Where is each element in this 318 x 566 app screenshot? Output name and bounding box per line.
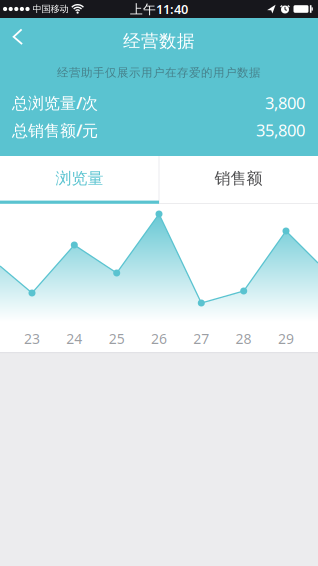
staticText: 经营助手仅展示用户在存爱的用户数据 <box>57 65 261 80</box>
staticText: 24 <box>66 329 82 348</box>
staticText: 销售额 <box>214 168 262 189</box>
staticText: 28 <box>236 329 252 348</box>
staticText: 3,800 <box>265 91 305 114</box>
staticText: 26 <box>151 329 167 348</box>
button[interactable]: 浏览量 <box>0 156 159 204</box>
staticText: 浏览量 <box>55 168 103 189</box>
staticText: 上午11:40 <box>130 0 188 18</box>
staticText: 总销售额/元 <box>12 119 98 141</box>
staticText: 27 <box>193 329 209 348</box>
staticText: 25 <box>109 329 125 348</box>
staticText: 中国移动 <box>33 3 69 15</box>
button[interactable]: 销售额 <box>159 156 318 204</box>
staticText: 35,800 <box>256 119 305 141</box>
staticText: 经营数据 <box>123 30 195 52</box>
staticText: 23 <box>24 329 40 348</box>
button[interactable]: 返回 <box>0 18 44 62</box>
staticText: 总浏览量/次 <box>12 92 98 114</box>
staticText: 29 <box>278 329 294 348</box>
